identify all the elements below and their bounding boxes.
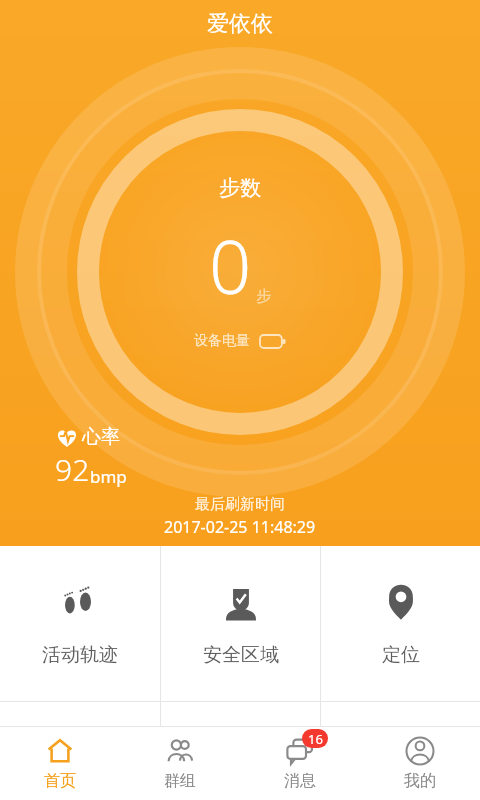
staticText: 2017-02-25 11:48:29 (164, 516, 316, 538)
staticText: 爱依依 (207, 10, 273, 38)
staticText: 安全区域 (203, 643, 279, 667)
staticText: bmp (90, 465, 127, 488)
staticText: 活动轨迹 (42, 643, 118, 667)
staticText: 群组 (164, 771, 196, 791)
button[interactable]: 群组 (120, 727, 240, 800)
staticText: 0 (209, 215, 252, 316)
button[interactable]: 定位 (321, 546, 480, 701)
staticText: 心率 (82, 425, 120, 449)
staticText: 消息 (284, 771, 316, 791)
staticText: 设备电量 (194, 332, 250, 350)
button[interactable]: 活动轨迹 (0, 546, 160, 701)
button[interactable]: 16 (240, 727, 360, 800)
button[interactable]: 安全区域 (161, 546, 320, 701)
staticText: 16 (308, 730, 323, 748)
staticText: 首页 (44, 771, 76, 791)
staticText: 定位 (382, 643, 420, 667)
staticText: 步 (256, 287, 271, 306)
staticText: 我的 (404, 771, 436, 791)
button[interactable]: 首页 (0, 727, 120, 800)
staticText: 92 (55, 449, 90, 490)
staticText: 最后刷新时间 (195, 495, 285, 514)
staticText: 步数 (219, 175, 261, 201)
button[interactable]: 我的 (360, 727, 480, 800)
